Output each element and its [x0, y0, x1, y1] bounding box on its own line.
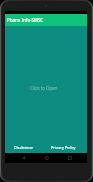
- button[interactable]: Home: [40, 153, 54, 163]
- button[interactable]: Privacy Policy: [50, 145, 76, 154]
- button[interactable]: Click to Open: [28, 84, 60, 92]
- button[interactable]: Back: [17, 153, 31, 163]
- staticText: Privacy Policy: [51, 145, 76, 150]
- button[interactable]: Recents: [63, 153, 77, 163]
- staticText: Phone Info-SMSC: [7, 17, 44, 23]
- button[interactable]: Disclaimer: [13, 145, 34, 154]
- staticText: Disclaimer: [14, 145, 34, 150]
